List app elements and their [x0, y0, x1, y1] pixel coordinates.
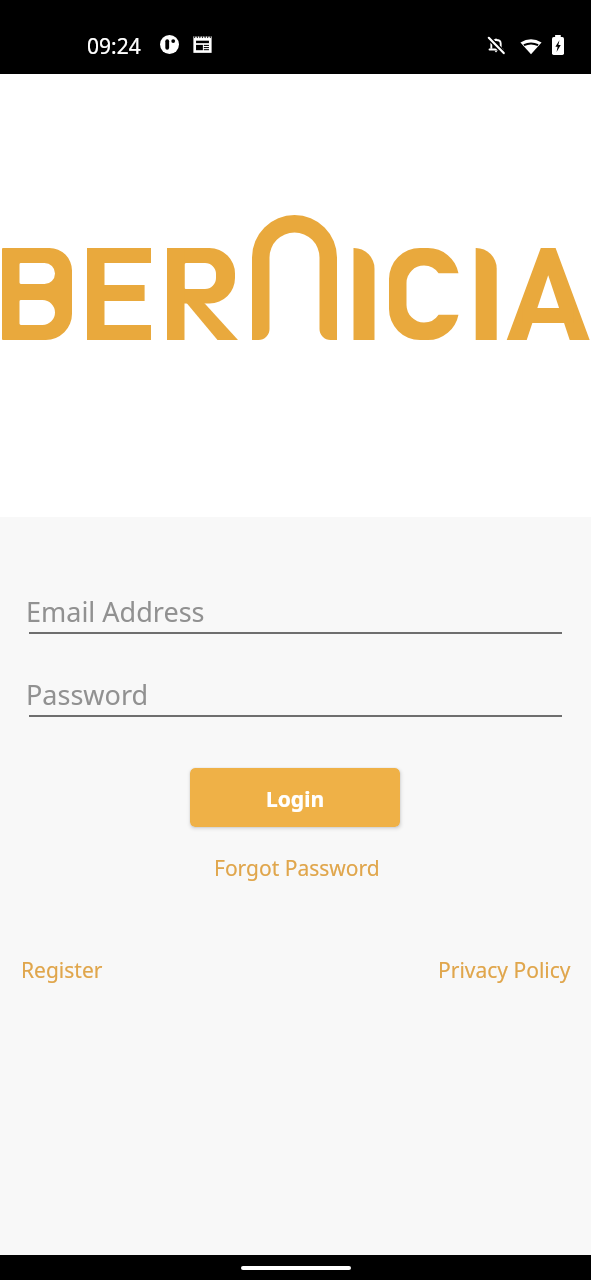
button[interactable]: Login [190, 768, 400, 827]
staticText: Register [21, 956, 103, 985]
staticText: Password [26, 676, 149, 713]
button[interactable]: Forgot Password [204, 844, 390, 893]
staticText: Email Address [26, 593, 205, 630]
other: Battery charging [552, 35, 564, 55]
button[interactable]: Register [11, 946, 113, 995]
button[interactable]: Password [26, 668, 565, 714]
button[interactable]: Email Address [26, 585, 565, 631]
staticText: Forgot Password [214, 854, 380, 883]
other: Wi-Fi [520, 34, 542, 55]
staticText: 09:24 [87, 32, 141, 57]
staticText: Login [266, 785, 325, 814]
button[interactable]: Privacy Policy [428, 946, 581, 995]
staticText: Privacy Policy [438, 956, 571, 985]
other: Notifications silenced [487, 34, 505, 55]
